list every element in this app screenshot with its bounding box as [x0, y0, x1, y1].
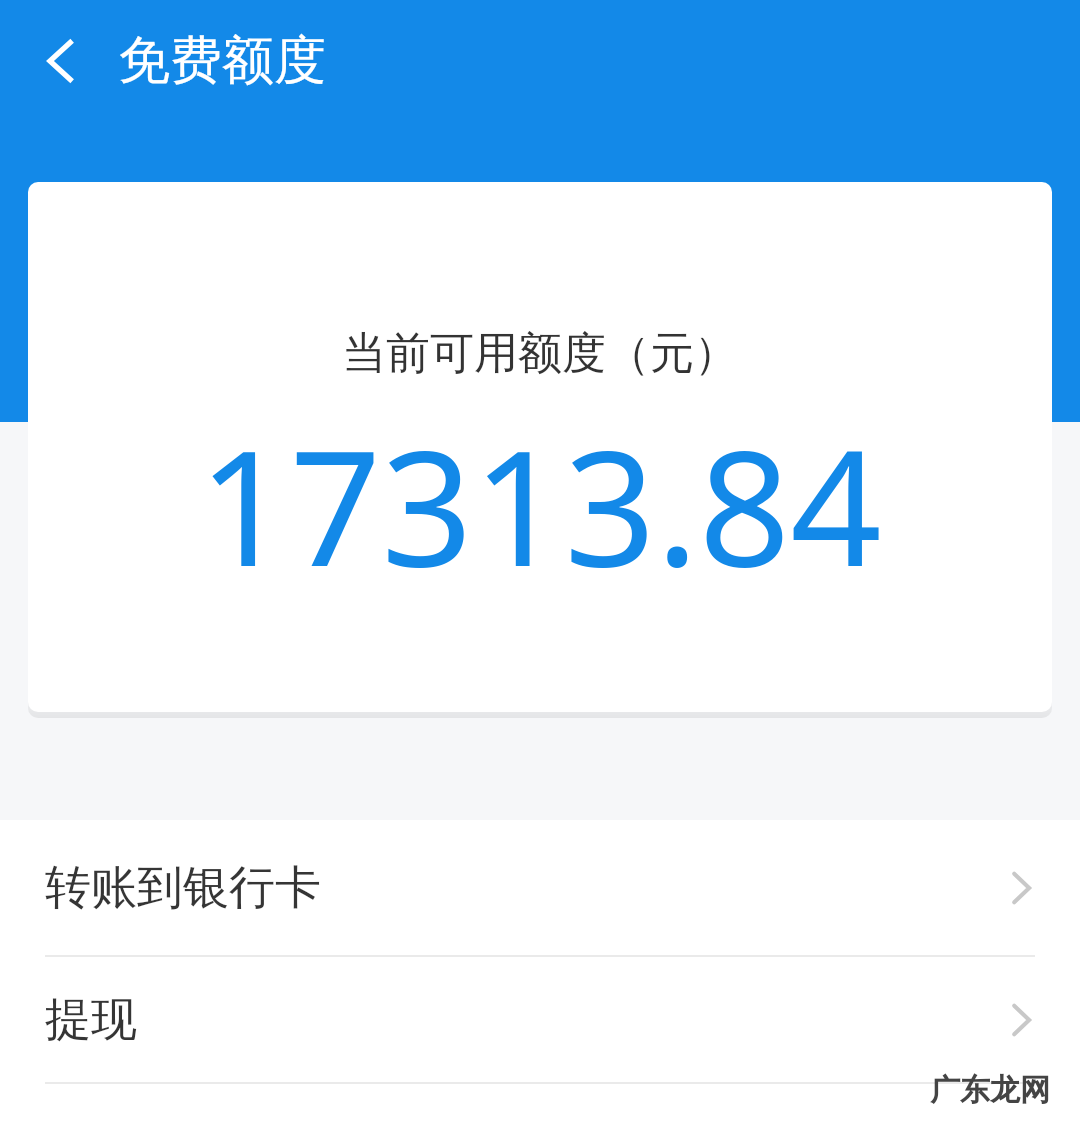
button[interactable]: 提现 [0, 957, 1080, 1082]
staticText: 广东龙网 [930, 1071, 1050, 1109]
staticText: 提现 [45, 991, 137, 1049]
staticText: 17313.84 [198, 395, 882, 613]
button[interactable]: Back [18, 18, 104, 104]
staticText: 当前可用额度（元） [342, 326, 738, 381]
button[interactable]: 转账到银行卡 [0, 820, 1080, 955]
staticText: 转账到银行卡 [45, 859, 321, 917]
staticText: 免费额度 [118, 28, 326, 94]
